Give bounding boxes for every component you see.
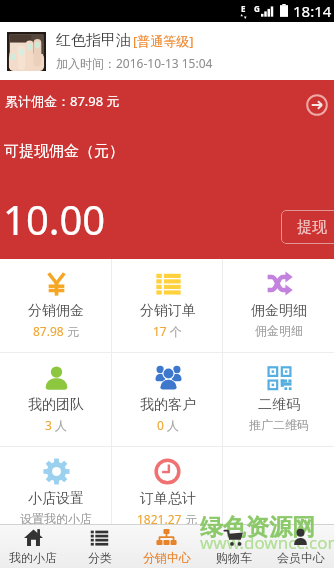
- button[interactable]: 我的小店: [0, 524, 66, 568]
- staticText: 人: [164, 417, 180, 433]
- staticText: 我的团队: [28, 396, 84, 414]
- button[interactable]: 提现: [281, 210, 334, 244]
- staticText: 1821.27: [137, 511, 182, 524]
- staticText: 累计佣金：87.98 元: [5, 92, 120, 110]
- staticText: 人: [52, 417, 68, 433]
- staticText: E: [241, 3, 246, 14]
- staticText: 17: [153, 323, 167, 339]
- button[interactable]: 分类: [66, 524, 133, 568]
- staticText: 红色指甲油: [56, 31, 131, 50]
- staticText: 我的客户: [140, 396, 196, 414]
- staticText: 设置我的小店: [20, 511, 92, 524]
- button[interactable]: 二维码: [223, 353, 334, 446]
- staticText: G: [254, 3, 260, 14]
- button[interactable]: 订单总计: [112, 447, 223, 524]
- staticText: 元: [64, 323, 80, 339]
- button[interactable]: 分销中心: [133, 524, 200, 568]
- button[interactable]: 我的客户: [112, 353, 223, 446]
- staticText: 分销订单: [140, 302, 196, 320]
- staticText: 购物车: [216, 550, 252, 565]
- staticText: [普通等级]: [133, 32, 194, 50]
- staticText: 绿色资源网: [200, 513, 315, 542]
- button[interactable]: 分销订单: [112, 259, 223, 352]
- staticText: 3: [45, 417, 52, 433]
- staticText: 87.98: [33, 323, 64, 339]
- staticText: 分销中心: [143, 550, 191, 565]
- staticText: 个: [167, 323, 183, 339]
- staticText: 10.00: [3, 192, 106, 246]
- staticText: 提现: [297, 218, 327, 237]
- staticText: 可提现佣金（元）: [4, 142, 124, 161]
- staticText: 推广二维码: [249, 417, 309, 432]
- staticText: 佣金明细: [255, 323, 303, 338]
- staticText: 分类: [88, 550, 112, 565]
- staticText: 二维码: [258, 396, 300, 414]
- staticText: 我的小店: [9, 550, 57, 565]
- button[interactable]: [223, 447, 334, 524]
- button[interactable]: More details: [306, 94, 328, 116]
- staticText: 小店设置: [28, 490, 84, 508]
- staticText: 分销佣金: [28, 302, 84, 320]
- staticText: 18:14: [293, 1, 332, 21]
- button[interactable]: 小店设置: [0, 447, 112, 524]
- staticText: 0: [157, 417, 164, 433]
- button[interactable]: 购物车: [200, 524, 267, 568]
- button[interactable]: 分销佣金: [0, 259, 112, 352]
- staticText: 订单总计: [140, 490, 196, 508]
- staticText: www.downcc.com: [200, 531, 334, 554]
- staticText: 佣金明细: [251, 302, 307, 320]
- staticText: 加入时间：2016-10-13 15:04: [56, 55, 213, 71]
- button[interactable]: 会员中心: [267, 524, 334, 568]
- staticText: 会员中心: [277, 550, 325, 565]
- button[interactable]: 我的团队: [0, 353, 112, 446]
- staticText: 元: [182, 511, 198, 524]
- button[interactable]: 佣金明细: [223, 259, 334, 352]
